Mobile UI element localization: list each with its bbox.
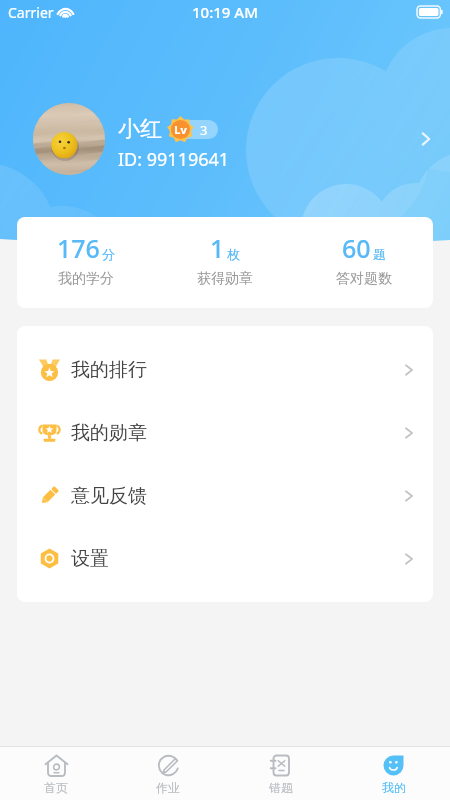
staticText: 小红 [118,115,162,143]
staticText: 176 [57,231,100,265]
staticText: 3 [200,121,208,139]
button[interactable]: 作业 [112,747,224,800]
staticText: 设置 [71,547,109,571]
button[interactable]: 意见反馈 [17,464,433,527]
staticText: 题 [373,246,386,262]
button[interactable]: 我的排行 [17,338,433,401]
button[interactable]: 设置 [17,527,433,590]
staticText: Carrier [8,3,54,22]
button[interactable]: 我的勋章 [17,401,433,464]
staticText: 我的学分 [58,270,114,288]
staticText: Lv [174,122,187,137]
staticText: 60 [342,231,371,265]
staticText: 分 [102,246,115,262]
staticText: 1 [210,231,225,265]
staticText: 10:19 AM [192,2,258,22]
button[interactable]: 错题 [224,747,337,800]
staticText: 获得勋章 [197,270,253,288]
staticText: 意见反馈 [71,484,147,508]
staticText: 首页 [44,780,68,795]
staticText: 答对题数 [336,270,392,288]
staticText: 枚 [227,246,240,262]
staticText: 错题 [269,780,293,795]
staticText: ID: 99119641 [118,147,230,172]
button[interactable]: 首页 [0,747,112,800]
button[interactable]: 小红 [0,103,450,175]
staticText: 我的勋章 [71,421,147,445]
staticText: 我的 [382,780,406,795]
staticText: 我的排行 [71,358,147,382]
staticText: 作业 [156,780,180,795]
button[interactable]: 我的 [337,747,450,800]
